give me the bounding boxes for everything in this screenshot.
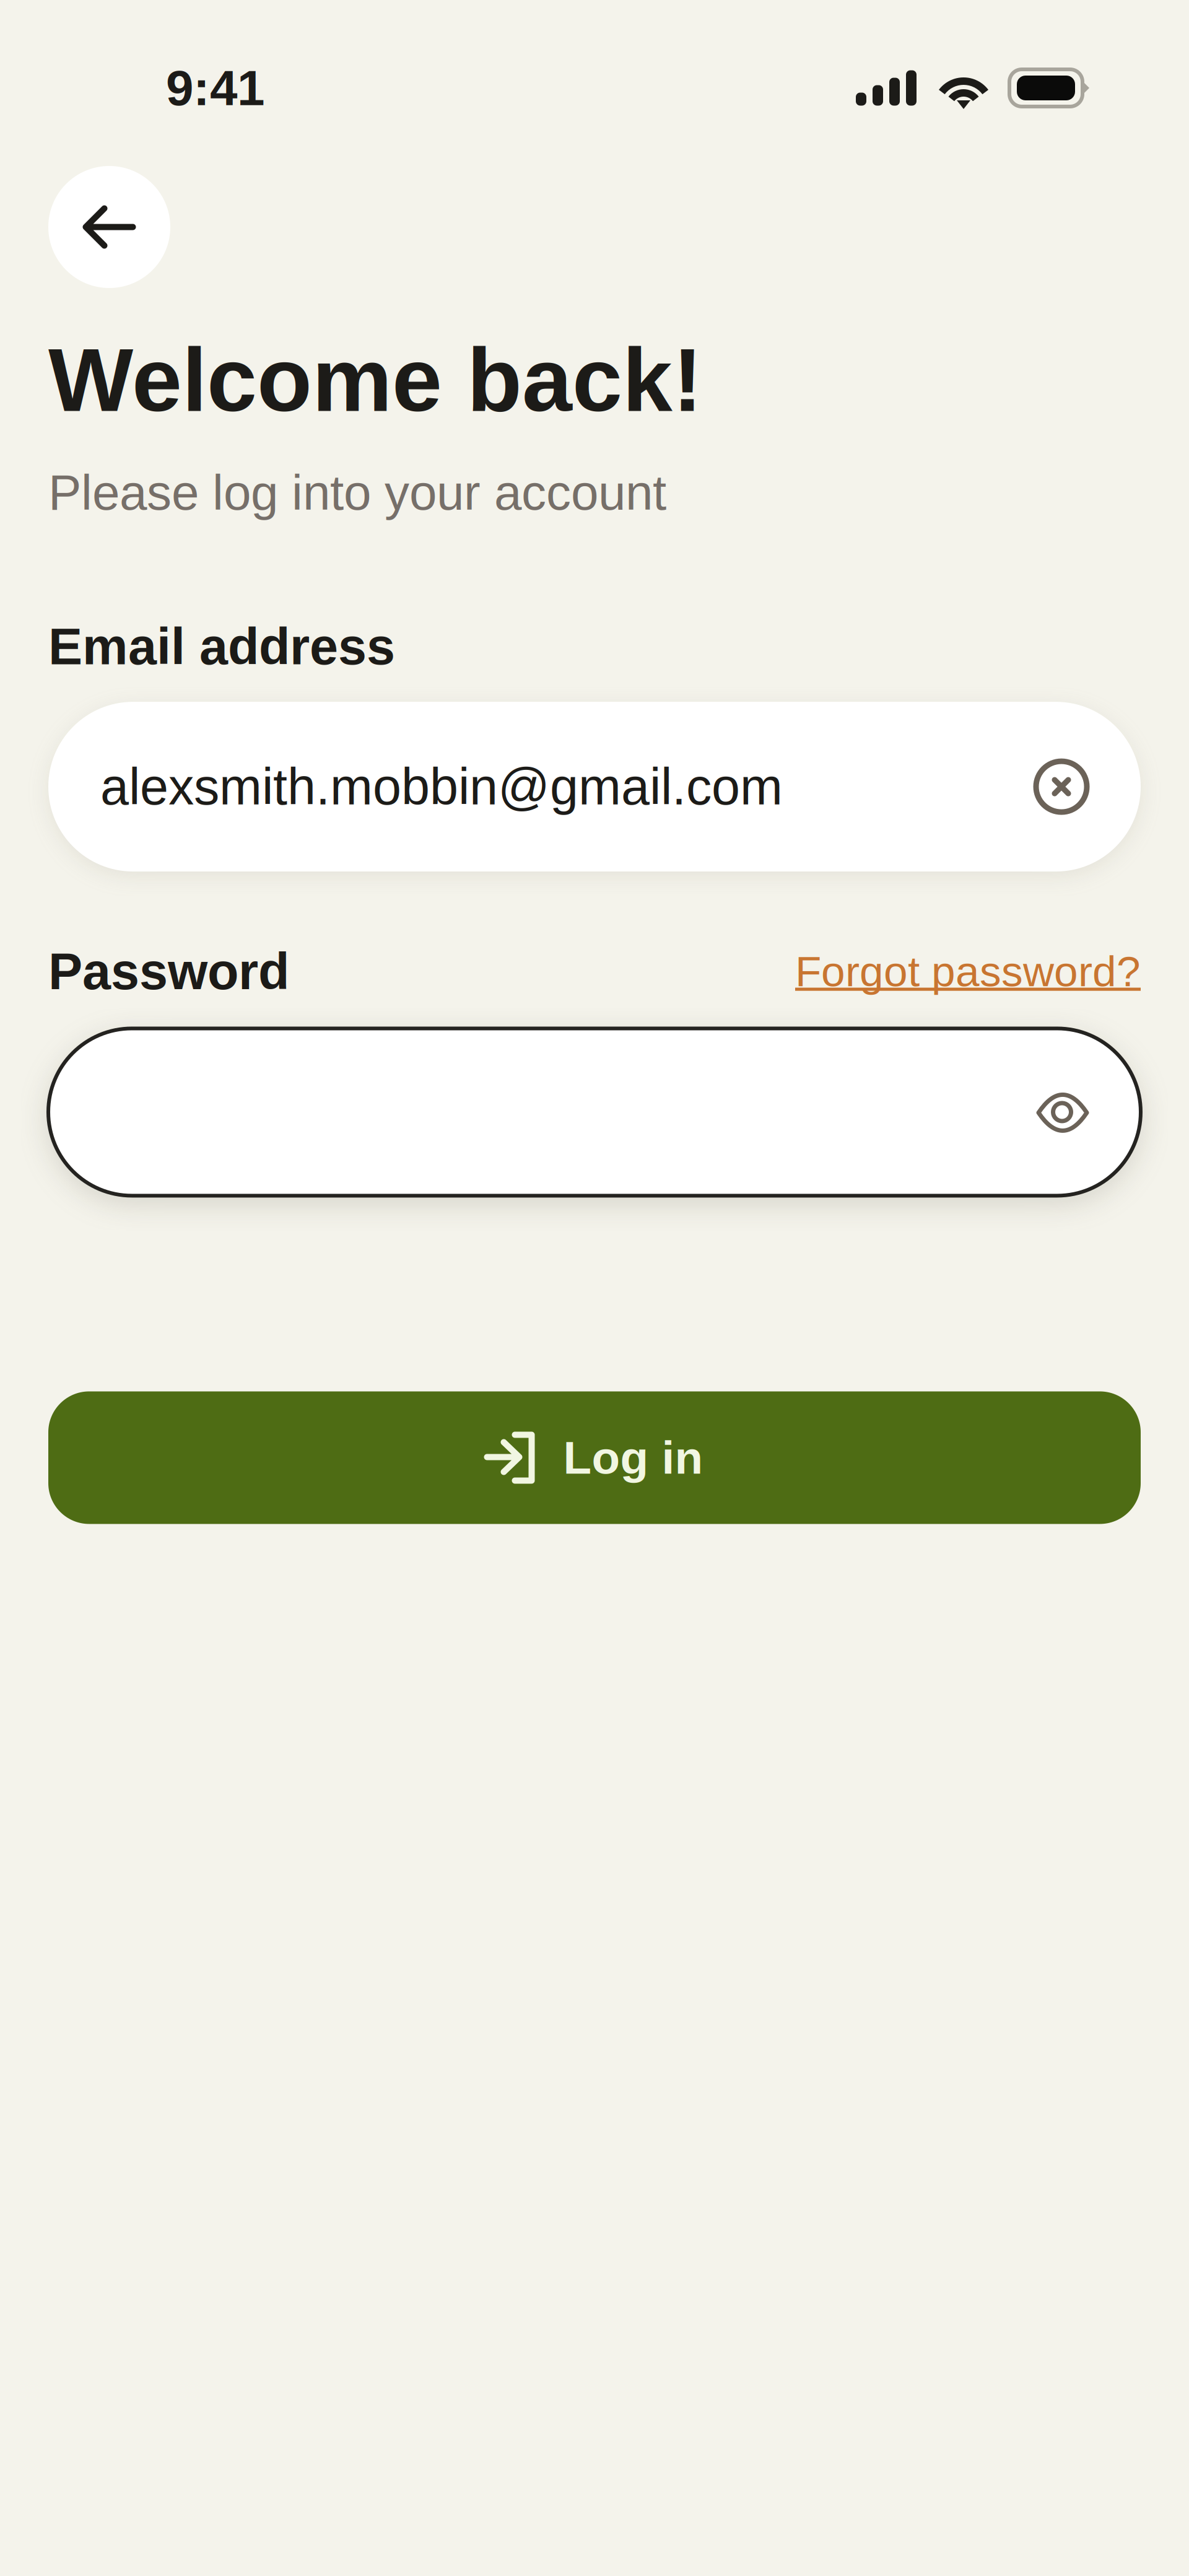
button[interactable]: Log in — [48, 1391, 1141, 1524]
staticText: Log in — [563, 1432, 703, 1483]
button[interactable]: Clear email — [1034, 759, 1089, 814]
staticText: Please log into your account — [48, 465, 666, 520]
staticText: Email address — [48, 618, 395, 675]
staticText: Forgot password? — [795, 947, 1141, 995]
staticText: alexsmith.mobbin@gmail.com — [100, 758, 783, 815]
staticText: Welcome back! — [48, 330, 702, 430]
staticText: 9:41 — [166, 60, 264, 116]
button[interactable]: Forgot password? — [795, 947, 1141, 995]
button[interactable]: Show password — [1035, 1093, 1089, 1131]
button[interactable]: Back — [48, 166, 170, 288]
staticText: Password — [48, 943, 289, 1000]
